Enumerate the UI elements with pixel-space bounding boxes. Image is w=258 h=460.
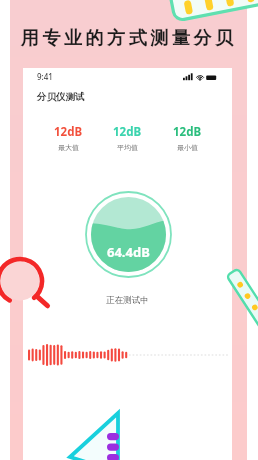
button[interactable]: 12dB [173,124,202,152]
staticText: 正在测试中 [23,295,232,306]
staticText: 12dB [173,124,202,140]
staticText: 9:41 [37,71,53,82]
staticText: 12dB [54,124,83,140]
staticText: 12dB [113,124,142,140]
staticText: 最小值 [177,143,198,152]
staticText: 平均值 [117,143,138,152]
staticText: 用专业的方式测量分贝 [19,27,235,50]
button[interactable]: 12dB [113,124,142,152]
button[interactable]: 64.4dB [85,191,172,278]
staticText: 最大值 [58,143,79,152]
staticText: 64.4dB [107,243,150,261]
button[interactable]: 12dB [54,124,83,152]
staticText: 分贝仪测试 [37,91,85,103]
